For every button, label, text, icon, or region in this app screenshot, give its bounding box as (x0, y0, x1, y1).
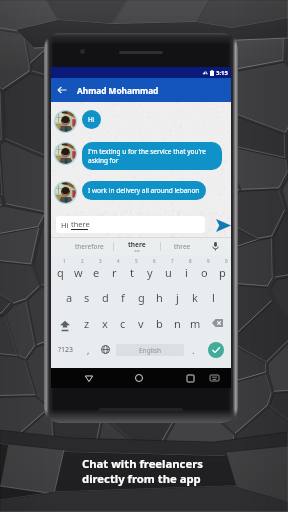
staticText: s (84, 290, 90, 305)
button[interactable]: 0 (213, 258, 231, 284)
button[interactable]: Back (54, 82, 70, 98)
staticText: l (212, 290, 215, 305)
staticText: 3 (99, 258, 102, 264)
staticText: 2 (81, 258, 84, 264)
staticText: 9 (207, 258, 210, 264)
button[interactable]: Recents (181, 369, 199, 387)
button[interactable]: Back (80, 369, 98, 387)
button[interactable]: I'm texting u for the service that you'r… (82, 142, 222, 170)
button[interactable]: a (60, 284, 78, 310)
staticText: directly from the app (82, 471, 201, 486)
staticText: 1 (63, 258, 66, 264)
button[interactable]: Voice input (208, 239, 222, 253)
button[interactable]: 8 (177, 258, 195, 284)
staticText: g (138, 290, 145, 305)
staticText: y (147, 265, 153, 280)
staticText: there (128, 240, 146, 249)
button[interactable]: Hi (56, 216, 205, 233)
staticText: b (156, 316, 163, 331)
button[interactable]: Send (215, 216, 231, 234)
button[interactable]: 6 (141, 258, 159, 284)
button[interactable]: ?123 (51, 336, 80, 363)
staticText: I'm texting u for the service that you'r… (88, 147, 216, 165)
staticText: o (201, 265, 208, 280)
button[interactable]: n (168, 310, 186, 336)
button[interactable]: g (132, 284, 150, 310)
staticText: p (219, 265, 226, 280)
button[interactable]: l (204, 284, 222, 310)
staticText: English (139, 346, 162, 355)
staticText: there (71, 219, 90, 229)
staticText: . (192, 344, 195, 356)
staticText: i (185, 265, 188, 280)
staticText: t (130, 265, 134, 280)
staticText: q (57, 265, 64, 280)
staticText: x (102, 316, 108, 331)
button[interactable]: s (78, 284, 96, 310)
button[interactable]: 5 (123, 258, 141, 284)
staticText: 4 (117, 258, 120, 264)
button[interactable]: k (186, 284, 204, 310)
staticText: j (176, 290, 179, 305)
staticText: Hi (61, 220, 71, 230)
staticText: I work in delivery all around lebanon (88, 186, 200, 195)
staticText: n (174, 316, 181, 331)
button[interactable]: Enter (201, 336, 231, 363)
staticText: a (66, 290, 73, 305)
staticText: z (84, 316, 90, 331)
staticText: , (87, 344, 90, 356)
staticText: c (120, 316, 126, 331)
button[interactable]: Hi (82, 110, 101, 129)
button[interactable]: 1 (51, 258, 69, 284)
button[interactable]: b (150, 310, 168, 336)
staticText: therefore (75, 242, 104, 251)
button[interactable]: d (96, 284, 114, 310)
button[interactable]: j (168, 284, 186, 310)
button[interactable]: therefore (65, 237, 113, 255)
button[interactable]: I work in delivery all around lebanon (82, 181, 206, 200)
staticText: d (102, 290, 109, 305)
button[interactable]: 9 (195, 258, 213, 284)
button[interactable]: there (114, 237, 160, 255)
staticText: v (138, 316, 144, 331)
staticText: Chat with freelancers (82, 456, 203, 471)
button[interactable]: x (96, 310, 114, 336)
button[interactable]: v (132, 310, 150, 336)
staticText: k (192, 290, 198, 305)
button[interactable]: f (114, 284, 132, 310)
button[interactable]: c (114, 310, 132, 336)
staticText: 5 (135, 258, 138, 264)
staticText: u (165, 265, 172, 280)
staticText: 0 (225, 258, 228, 264)
button[interactable]: Shift (51, 310, 78, 336)
button[interactable]: . (185, 336, 201, 363)
button[interactable]: 3 (87, 258, 105, 284)
button[interactable]: h (150, 284, 168, 310)
button[interactable]: Keyboard (206, 370, 222, 386)
staticText: ?123 (58, 345, 74, 355)
staticText: Ahmad Mohammad (77, 85, 159, 96)
button[interactable]: m (186, 310, 204, 336)
button[interactable]: z (78, 310, 96, 336)
staticText: m (190, 316, 201, 331)
staticText: Hi (88, 115, 95, 124)
button[interactable]: , (80, 336, 96, 363)
staticText: 6 (153, 258, 156, 264)
button[interactable]: English (116, 344, 184, 356)
button[interactable]: three (161, 237, 203, 255)
staticText: e (93, 265, 100, 280)
staticText: 3:15 (216, 69, 228, 77)
staticText: r (112, 265, 117, 280)
staticText: h (156, 290, 163, 305)
button[interactable]: 2 (69, 258, 87, 284)
staticText: 8 (189, 258, 192, 264)
button[interactable]: 7 (159, 258, 177, 284)
staticText: three (174, 242, 191, 251)
staticText: 7 (171, 258, 174, 264)
button[interactable]: Home (130, 369, 148, 387)
button[interactable]: 4 (105, 258, 123, 284)
staticText: w (74, 265, 83, 280)
staticText: f (121, 290, 125, 305)
button[interactable]: Change language (96, 336, 115, 363)
button[interactable]: Backspace (204, 310, 231, 336)
